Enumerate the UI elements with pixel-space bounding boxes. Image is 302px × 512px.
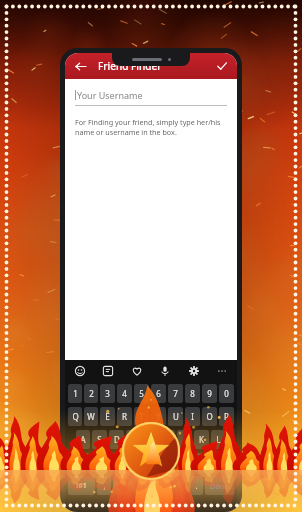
button[interactable]: , xyxy=(97,476,111,495)
button[interactable]: V xyxy=(143,453,158,472)
button[interactable]: 6 xyxy=(151,384,166,403)
staticText: M xyxy=(198,457,206,468)
staticText: O xyxy=(206,411,213,422)
staticText: L xyxy=(216,434,221,445)
button[interactable]: 1 xyxy=(68,384,82,403)
button[interactable]: K xyxy=(194,430,209,449)
staticText: 5 xyxy=(139,388,144,399)
button[interactable]: Back xyxy=(72,58,88,74)
staticText: C xyxy=(131,457,137,468)
staticText: T xyxy=(139,411,144,422)
button[interactable]: S xyxy=(92,430,107,449)
staticText: Y xyxy=(156,411,161,422)
button[interactable]: H xyxy=(160,430,175,449)
button[interactable]: 7 xyxy=(168,384,183,403)
staticText: F xyxy=(131,434,136,445)
staticText: K xyxy=(199,434,204,445)
button[interactable]: T xyxy=(134,407,149,426)
staticText: 8 xyxy=(190,388,195,399)
button[interactable]: O xyxy=(202,407,217,426)
button[interactable]: App icon xyxy=(122,422,180,480)
button[interactable]: 2 xyxy=(84,384,98,403)
staticText: 2 xyxy=(89,388,94,399)
button[interactable]: A xyxy=(76,430,90,449)
staticText: Your Username xyxy=(77,89,143,101)
staticText: J xyxy=(183,434,186,445)
staticText: H xyxy=(165,434,171,445)
button[interactable]: R xyxy=(117,407,132,426)
button[interactable]: 3 xyxy=(100,384,115,403)
button[interactable]: C xyxy=(126,453,141,472)
staticText: I xyxy=(191,411,194,422)
button[interactable]: E xyxy=(100,407,115,426)
button[interactable]: Settings xyxy=(185,362,203,380)
staticText: V xyxy=(148,457,153,468)
staticText: E xyxy=(105,411,110,422)
button[interactable]: U xyxy=(168,407,183,426)
button[interactable]: D xyxy=(109,430,124,449)
button[interactable]: Shift xyxy=(68,453,90,472)
staticText: X xyxy=(114,457,119,468)
button[interactable]: Done xyxy=(205,476,234,495)
button[interactable]: I xyxy=(185,407,200,426)
button[interactable]: Voice input xyxy=(156,362,174,380)
staticText: !#1 xyxy=(76,481,87,491)
button[interactable]: X xyxy=(109,453,124,472)
button[interactable]: 0 xyxy=(219,384,234,403)
button[interactable]: N xyxy=(177,453,192,472)
button[interactable]: L xyxy=(211,430,226,449)
button[interactable]: Your Username xyxy=(75,89,227,106)
staticText: For Finding your friend, simply type her… xyxy=(75,117,227,137)
staticText: Q xyxy=(72,411,79,422)
staticText: G xyxy=(148,434,154,445)
button[interactable]: Y xyxy=(151,407,166,426)
staticText: 9 xyxy=(207,388,212,399)
button[interactable]: 8 xyxy=(185,384,200,403)
staticText: A xyxy=(80,434,86,445)
staticText: 7 xyxy=(173,388,178,399)
button[interactable]: Emoji xyxy=(71,362,89,380)
button[interactable]: G xyxy=(143,430,158,449)
button[interactable]: F xyxy=(126,430,141,449)
button[interactable]: Space xyxy=(113,476,187,495)
button[interactable]: Q xyxy=(68,407,82,426)
button[interactable]: B xyxy=(160,453,175,472)
button[interactable]: 5 xyxy=(134,384,149,403)
staticText: U xyxy=(173,411,179,422)
staticText: N xyxy=(181,457,188,468)
button[interactable]: GIF xyxy=(128,362,146,380)
staticText: Done xyxy=(210,481,230,491)
button[interactable]: Z xyxy=(92,453,107,472)
button[interactable]: !#1 xyxy=(68,476,95,495)
staticText: Friend Finder xyxy=(98,59,162,73)
staticText: W xyxy=(87,411,95,422)
staticText: S xyxy=(97,434,102,445)
button[interactable]: Confirm xyxy=(214,58,230,74)
button[interactable]: M xyxy=(194,453,209,472)
staticText: R xyxy=(122,411,127,422)
staticText: 0 xyxy=(224,388,229,399)
button[interactable]: 4 xyxy=(117,384,132,403)
button[interactable]: . xyxy=(189,476,203,495)
staticText: Z xyxy=(97,457,102,468)
button[interactable]: Stickers xyxy=(99,362,117,380)
button[interactable]: More options xyxy=(213,362,231,380)
button[interactable]: P xyxy=(219,407,234,426)
staticText: . xyxy=(195,480,198,491)
staticText: 4 xyxy=(122,388,127,399)
staticText: 3 xyxy=(105,388,110,399)
button[interactable]: Backspace xyxy=(211,453,234,472)
staticText: , xyxy=(103,480,106,491)
staticText: P xyxy=(224,411,229,422)
staticText: 6 xyxy=(156,388,161,399)
button[interactable]: W xyxy=(84,407,98,426)
button[interactable]: J xyxy=(177,430,192,449)
button[interactable]: 9 xyxy=(202,384,217,403)
staticText: 1 xyxy=(73,388,78,399)
staticText: D xyxy=(114,434,120,445)
